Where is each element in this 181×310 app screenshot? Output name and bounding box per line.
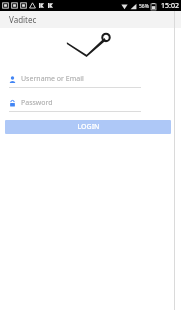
button[interactable]: Username bbox=[0, 74, 181, 88]
staticText: Vaditec bbox=[9, 14, 37, 25]
staticText: Username or Email bbox=[21, 74, 84, 84]
staticText: 56% bbox=[139, 3, 149, 10]
staticText: 15:02 bbox=[161, 1, 179, 11]
button[interactable]: Password bbox=[0, 98, 181, 112]
other: Username bbox=[9, 76, 16, 83]
staticText: Password bbox=[21, 98, 53, 108]
button[interactable]: LOGIN bbox=[5, 120, 171, 134]
other: Password bbox=[9, 100, 16, 107]
staticText: LOGIN bbox=[77, 122, 100, 132]
